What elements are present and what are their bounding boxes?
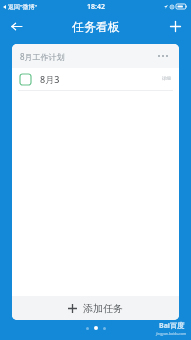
button[interactable]: Add board	[165, 16, 185, 36]
staticText: jingyan.baidu.com	[156, 331, 187, 336]
staticText: 添加任务	[83, 302, 123, 315]
button[interactable]: 添加任务	[12, 296, 179, 320]
staticText: 返回"微博"	[8, 3, 37, 11]
button[interactable]: More options	[155, 50, 171, 62]
staticText: Bai百度	[159, 321, 184, 331]
staticText: 8月工作计划	[20, 51, 65, 62]
staticText: 18:42	[87, 2, 105, 12]
button[interactable]: Toggle task done	[12, 68, 179, 90]
staticText: 8月3	[40, 73, 60, 85]
staticText: 详细	[162, 76, 171, 82]
button[interactable]: Toggle task done	[20, 74, 31, 85]
button[interactable]: Back	[6, 16, 26, 36]
button[interactable]: 8月工作计划	[12, 44, 179, 68]
staticText: 任务看板	[72, 19, 120, 34]
